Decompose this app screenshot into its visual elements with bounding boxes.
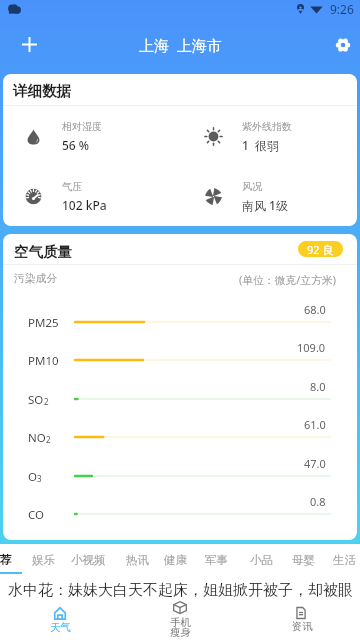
staticText: 小品 [250, 553, 273, 567]
button[interactable]: 健康 [164, 544, 187, 577]
staticText: PM10 [28, 353, 59, 369]
staticText: 资讯 [292, 620, 313, 633]
button[interactable]: NO [3, 418, 357, 456]
staticText: 上海 上海市 [139, 35, 222, 55]
button[interactable]: 小视频 [71, 544, 106, 577]
button[interactable]: 生活 [333, 544, 356, 577]
button[interactable]: Settings [326, 28, 360, 62]
staticText: 0.8 [310, 494, 326, 509]
staticText: 手机 [170, 616, 191, 629]
staticText: 1 很弱 [242, 137, 280, 153]
staticText: 污染成分 [14, 272, 58, 286]
staticText: SO [28, 392, 44, 408]
button[interactable]: 荐 [0, 544, 12, 577]
staticText: 56 % [62, 137, 90, 153]
button[interactable]: O [3, 457, 357, 495]
button[interactable]: 热讯 [126, 544, 149, 577]
button[interactable]: 手机 [120, 598, 240, 640]
button[interactable]: CO [3, 495, 357, 533]
staticText: 相对湿度 [62, 120, 102, 133]
staticText: CO [28, 507, 45, 523]
staticText: (单位：微克/立方米) [239, 272, 336, 287]
staticText: 2 [46, 434, 51, 445]
button[interactable]: 军事 [205, 544, 228, 577]
button[interactable]: 紫外线指数 [183, 107, 357, 165]
staticText: 健康 [164, 553, 187, 567]
button[interactable]: PM10 [3, 341, 357, 379]
button[interactable]: 水中花：妹妹大白天不起床，姐姐掀开被子，却被眼 [0, 577, 360, 601]
staticText: 母婴 [292, 553, 315, 567]
staticText: 详细数据 [13, 82, 71, 100]
button[interactable]: 小品 [250, 544, 273, 577]
staticText: 小视频 [71, 553, 106, 567]
button[interactable]: 资讯 [240, 598, 360, 640]
staticText: 47.0 [304, 456, 326, 471]
staticText: 天气 [50, 621, 71, 634]
staticText: 南风 1级 [242, 197, 288, 213]
button[interactable]: 母婴 [292, 544, 315, 577]
button[interactable]: 风况 [183, 167, 357, 225]
staticText: PM25 [28, 315, 59, 331]
staticText: 瘦身 [170, 626, 191, 639]
staticText: 娱乐 [32, 553, 55, 567]
staticText: 水中花：妹妹大白天不起床，姐姐掀开被子，却被眼 [8, 581, 353, 600]
staticText: 3 [37, 473, 42, 484]
staticText: 风况 [242, 180, 262, 193]
button[interactable]: PM25 [3, 303, 357, 341]
staticText: 气压 [62, 180, 82, 193]
button[interactable]: 92 良 [298, 241, 343, 257]
staticText: 68.0 [304, 302, 326, 317]
staticText: 92 良 [307, 242, 334, 257]
button[interactable]: 相对湿度 [3, 107, 180, 165]
staticText: 热讯 [126, 553, 149, 567]
button[interactable]: 天气 [0, 598, 120, 640]
staticText: NO [28, 430, 46, 446]
staticText: 荐 [0, 553, 12, 567]
button[interactable]: Add city [11, 26, 47, 62]
staticText: 生活 [333, 553, 356, 567]
staticText: 102 kPa [62, 197, 107, 213]
staticText: 8.0 [310, 379, 326, 394]
staticText: 61.0 [304, 417, 326, 432]
button[interactable]: 娱乐 [32, 544, 55, 577]
staticText: 9:26 [330, 1, 354, 17]
button[interactable]: 气压 [3, 167, 180, 225]
staticText: 2 [44, 396, 49, 407]
button[interactable]: SO [3, 380, 357, 418]
staticText: O [28, 469, 37, 485]
staticText: 军事 [205, 553, 228, 567]
staticText: 空气质量 [14, 243, 72, 261]
staticText: 109.0 [297, 340, 326, 355]
staticText: 紫外线指数 [242, 120, 292, 133]
